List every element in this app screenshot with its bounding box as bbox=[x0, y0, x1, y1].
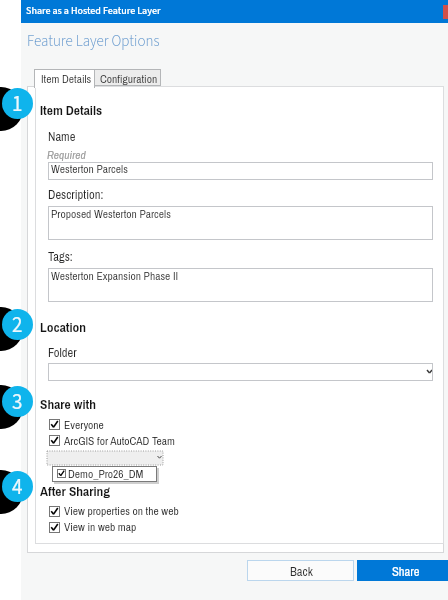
staticText: 2 bbox=[12, 310, 23, 340]
staticText: Required bbox=[47, 147, 86, 162]
staticText: View in web map bbox=[64, 519, 137, 534]
staticText: Demo_Pro26_DM bbox=[68, 466, 144, 481]
staticText: Everyone bbox=[64, 417, 104, 432]
staticText: Item Details bbox=[41, 71, 92, 86]
staticText: Westerton Parcels bbox=[51, 161, 128, 176]
button[interactable]: Group list bbox=[47, 451, 163, 465]
staticText: Westerton Expansion Phase II bbox=[51, 268, 179, 283]
button[interactable] bbox=[47, 504, 184, 519]
staticText: Share bbox=[392, 563, 420, 580]
staticText: Proposed Westerton Parcels bbox=[51, 206, 171, 221]
staticText: Share as a Hosted Feature Layer bbox=[26, 4, 161, 18]
button[interactable] bbox=[52, 466, 157, 482]
staticText: Location bbox=[40, 318, 87, 336]
staticText: After Sharing bbox=[40, 482, 111, 500]
button[interactable] bbox=[48, 162, 433, 180]
staticText: Feature Layer Options bbox=[27, 31, 160, 52]
button[interactable] bbox=[47, 417, 184, 432]
button[interactable]: Folder dropdown bbox=[48, 363, 433, 381]
staticText: ArcGIS for AutoCAD Team bbox=[64, 433, 175, 448]
staticText: 1 bbox=[12, 89, 23, 119]
staticText: Description: bbox=[48, 186, 104, 203]
staticText: Item Details bbox=[40, 101, 103, 119]
button[interactable] bbox=[247, 560, 354, 581]
button[interactable] bbox=[94, 69, 161, 86]
staticText: Name bbox=[48, 128, 76, 145]
button[interactable] bbox=[48, 268, 433, 302]
button[interactable] bbox=[357, 560, 448, 581]
staticText: 4 bbox=[12, 472, 23, 502]
staticText: Folder bbox=[48, 344, 77, 361]
button[interactable] bbox=[47, 433, 184, 448]
button[interactable] bbox=[34, 69, 95, 88]
staticText: Share with bbox=[40, 395, 96, 413]
staticText: View properties on the web bbox=[64, 503, 179, 518]
button[interactable] bbox=[47, 520, 184, 535]
staticText: 3 bbox=[12, 387, 23, 417]
staticText: Configuration bbox=[100, 71, 158, 86]
staticText: Tags: bbox=[48, 248, 73, 265]
button[interactable] bbox=[48, 206, 433, 240]
staticText: Back bbox=[290, 563, 313, 580]
